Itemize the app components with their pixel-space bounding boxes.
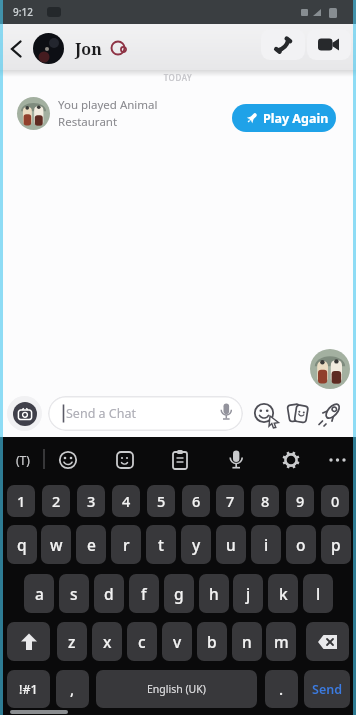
button[interactable]: d [94, 574, 124, 613]
button[interactable]: t [146, 525, 176, 564]
button[interactable] [316, 398, 346, 430]
staticText: . [279, 679, 284, 699]
button[interactable]: English (UK) [96, 670, 257, 708]
button[interactable]: f [129, 574, 159, 613]
button[interactable] [307, 29, 351, 60]
staticText: a [35, 583, 44, 604]
button[interactable]: Send [304, 670, 350, 708]
staticText: You played Animal Restaurant [58, 97, 158, 129]
button[interactable] [33, 33, 64, 64]
button[interactable]: u [216, 525, 246, 564]
button[interactable]: !#1 [7, 670, 50, 708]
staticText: 7 [226, 491, 235, 511]
button[interactable] [4, 36, 30, 62]
button[interactable] [306, 622, 349, 661]
staticText: q [17, 534, 27, 555]
button[interactable] [7, 622, 50, 661]
button[interactable]: e [76, 525, 106, 564]
staticText: n [242, 631, 252, 652]
staticText: i [264, 534, 269, 555]
staticText: c [138, 631, 146, 652]
button[interactable] [53, 445, 83, 475]
button[interactable]: s [59, 574, 89, 613]
button[interactable] [221, 445, 251, 475]
staticText: 2 [52, 491, 61, 511]
staticText: h [209, 583, 219, 604]
staticText: y [192, 534, 201, 555]
staticText: 6 [192, 491, 201, 511]
button[interactable] [7, 396, 42, 431]
staticText: English (UK) [147, 682, 206, 696]
button[interactable] [110, 445, 140, 475]
button[interactable]: q [7, 525, 37, 564]
button[interactable] [322, 445, 352, 475]
staticText: 9 [296, 491, 305, 511]
button[interactable]: p [321, 525, 351, 564]
button[interactable]: Send a Chat [48, 396, 243, 431]
staticText: p [331, 534, 341, 555]
staticText: TODAY [0, 72, 356, 84]
button[interactable] [165, 445, 195, 475]
button[interactable]: z [57, 622, 87, 661]
staticText: u [226, 534, 236, 555]
button[interactable]: 6 [182, 485, 210, 517]
button[interactable]: a [24, 574, 54, 613]
button[interactable]: 0 [321, 485, 349, 517]
button[interactable]: h [199, 574, 229, 613]
staticText: w [50, 534, 63, 555]
staticText: 5 [157, 491, 166, 511]
button[interactable]: m [266, 622, 296, 661]
button[interactable]: x [92, 622, 122, 661]
staticText: 1 [17, 491, 26, 511]
button[interactable]: w [41, 525, 71, 564]
button[interactable]: v [162, 622, 192, 661]
staticText: g [174, 583, 184, 604]
button[interactable]: 4 [112, 485, 140, 517]
button[interactable]: g [164, 574, 194, 613]
button[interactable]: j [233, 574, 263, 613]
staticText: !#1 [19, 681, 38, 698]
button[interactable] [284, 398, 312, 430]
button[interactable]: (T) [6, 444, 40, 476]
button[interactable]: 7 [216, 485, 244, 517]
button[interactable]: 2 [42, 485, 70, 517]
staticText: 3 [87, 491, 96, 511]
button[interactable]: b [197, 622, 227, 661]
button[interactable]: c [127, 622, 157, 661]
staticText: f [141, 583, 147, 604]
button[interactable]: y [181, 525, 211, 564]
button[interactable]: i [251, 525, 281, 564]
button[interactable] [276, 445, 306, 475]
button[interactable] [261, 29, 305, 60]
button[interactable]: 5 [147, 485, 175, 517]
staticText: , [70, 679, 75, 699]
button[interactable]: Play Again [232, 104, 336, 132]
button[interactable]: 3 [77, 485, 105, 517]
button[interactable]: , [56, 670, 89, 708]
button[interactable]: o [286, 525, 316, 564]
button[interactable]: n [232, 622, 262, 661]
staticText: v [173, 631, 182, 652]
button[interactable]: 1 [7, 485, 35, 517]
staticText: Send [312, 681, 342, 698]
staticText: k [279, 583, 288, 604]
staticText: z [68, 631, 76, 652]
staticText: t [158, 534, 164, 555]
staticText: m [274, 631, 289, 652]
staticText: Play Again [263, 110, 329, 127]
button[interactable]: l [303, 574, 333, 613]
staticText: r [123, 534, 130, 555]
staticText: 8 [261, 491, 270, 511]
staticText: (T) [16, 452, 30, 468]
staticText: 0 [331, 491, 340, 511]
staticText: o [296, 534, 306, 555]
button[interactable] [250, 398, 282, 430]
button[interactable]: 8 [251, 485, 279, 517]
staticText: Jon [75, 38, 102, 60]
button[interactable]: . [265, 670, 298, 708]
button[interactable]: r [111, 525, 141, 564]
staticText: x [103, 631, 112, 652]
button[interactable]: k [268, 574, 298, 613]
button[interactable]: 9 [286, 485, 314, 517]
staticText: b [207, 631, 217, 652]
